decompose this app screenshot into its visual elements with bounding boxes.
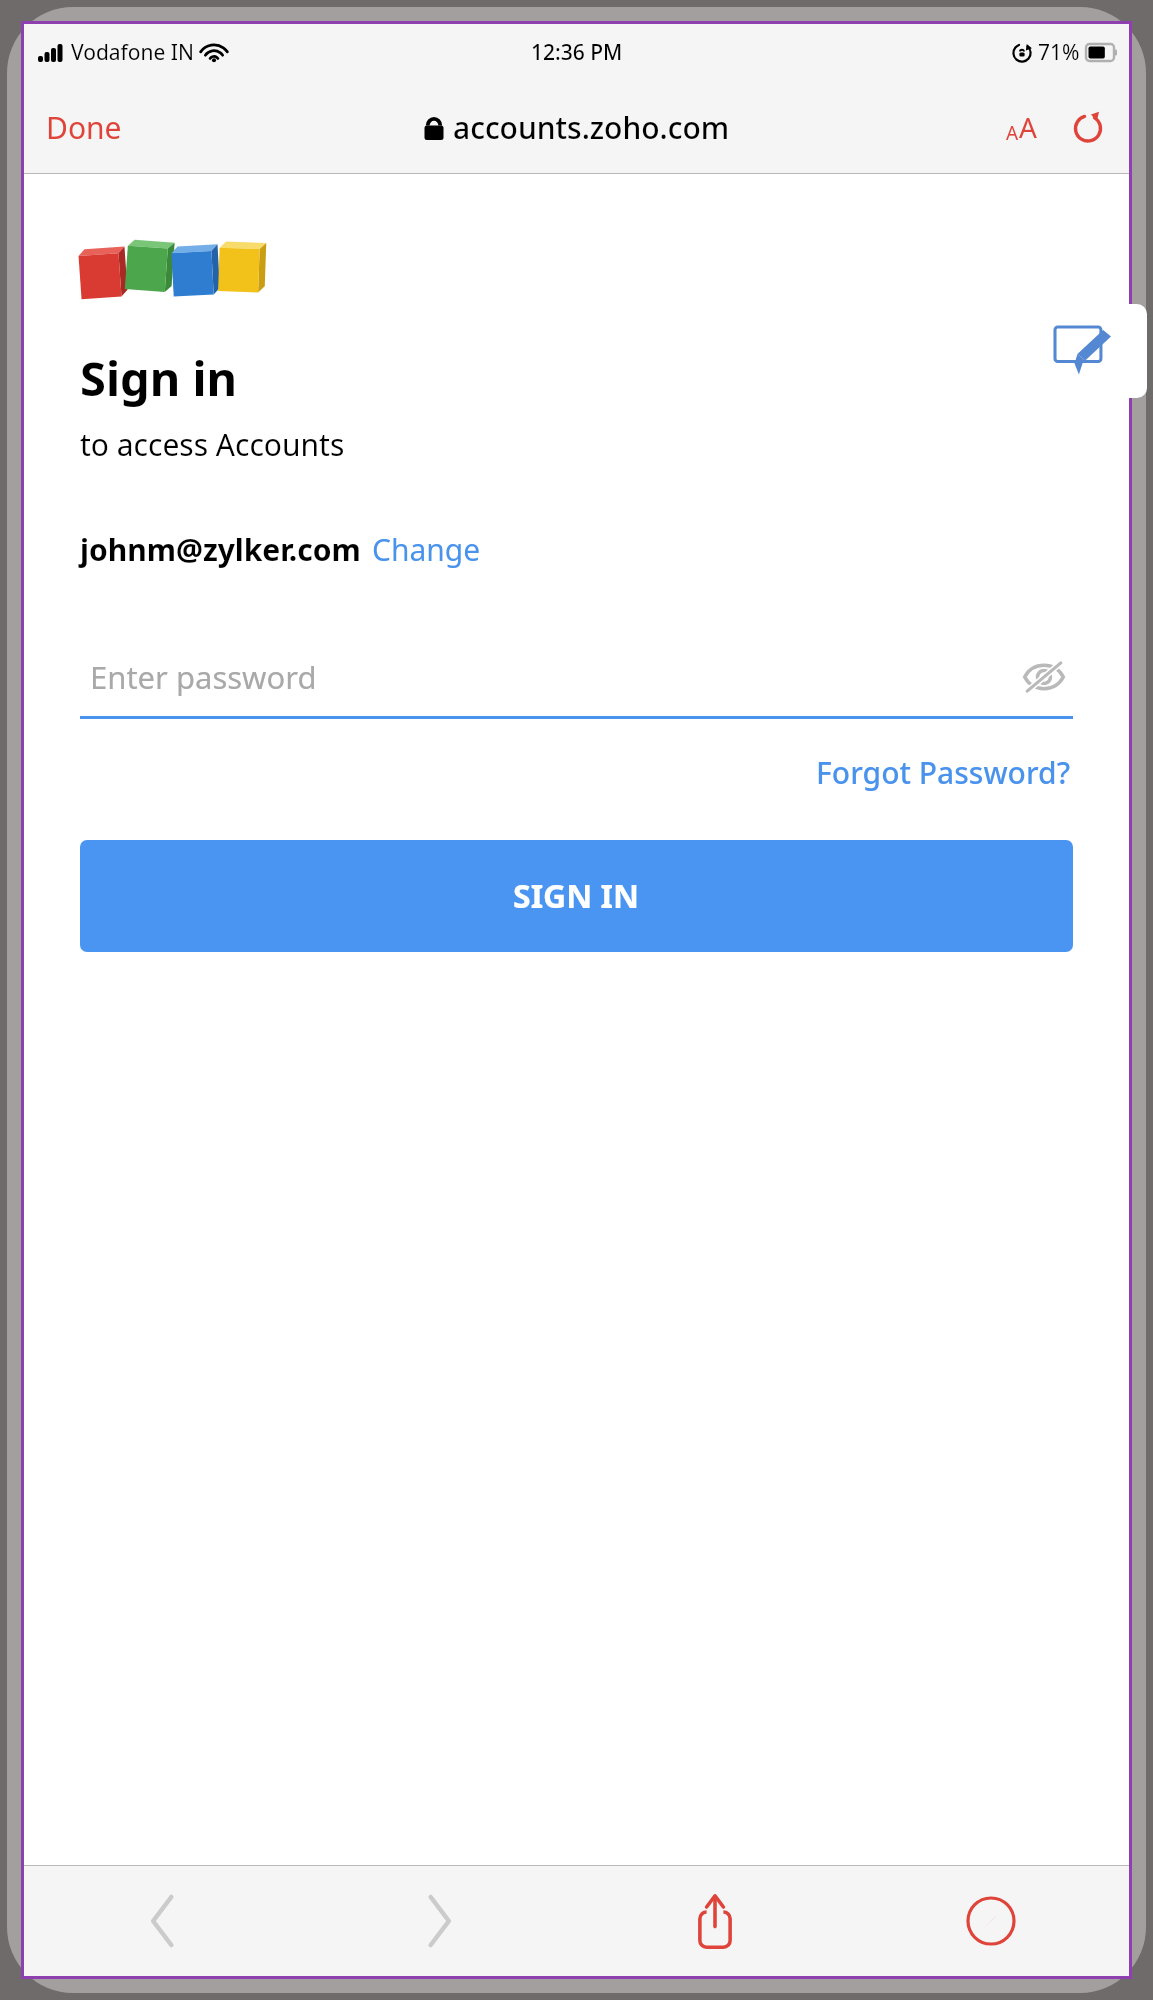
staticText: Change <box>372 529 481 570</box>
button[interactable]: Forward <box>301 1866 577 1976</box>
button[interactable]: Enter password <box>80 638 1073 719</box>
staticText: accounts.zoho.com <box>453 107 730 148</box>
button[interactable]: Show password <box>1015 654 1073 700</box>
button[interactable]: Back <box>24 1866 301 1976</box>
button[interactable]: Done <box>24 93 144 162</box>
button[interactable]: Change <box>361 523 492 576</box>
button[interactable]: Forgot Password? <box>808 745 1079 800</box>
staticText: Enter password <box>90 656 317 698</box>
staticText: 71% <box>1038 38 1080 67</box>
button[interactable]: SIGN IN <box>80 840 1073 952</box>
button[interactable]: accounts.zoho.com <box>414 99 740 156</box>
button[interactable]: Share <box>577 1866 853 1976</box>
staticText: A <box>1006 120 1019 146</box>
staticText: to access Accounts <box>80 424 345 465</box>
staticText: Done <box>46 107 122 148</box>
button[interactable]: Feedback <box>1035 304 1147 398</box>
button[interactable]: Bookmarks <box>853 1866 1129 1976</box>
button[interactable]: Reload <box>1063 102 1113 152</box>
staticText: johnm@zylker.com <box>80 529 361 570</box>
staticText: A <box>1019 108 1037 146</box>
staticText: Forgot Password? <box>816 752 1071 793</box>
button[interactable]: Text size <box>996 98 1047 156</box>
staticText: Vodafone IN <box>71 38 194 67</box>
staticText: SIGN IN <box>513 874 640 918</box>
staticText: Sign in <box>80 346 238 410</box>
staticText: 12:36 PM <box>531 38 623 67</box>
